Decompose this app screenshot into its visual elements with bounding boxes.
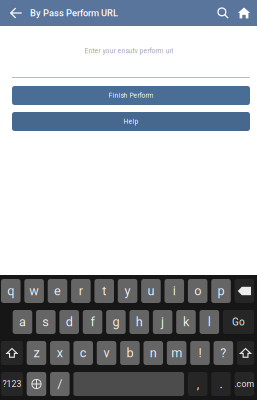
button[interactable]: Help — [12, 112, 250, 131]
staticText: v — [104, 346, 110, 360]
button[interactable]: h — [129, 310, 149, 334]
button[interactable]: Home — [234, 3, 254, 23]
button[interactable]: q — [1, 279, 21, 303]
button[interactable]: n — [143, 341, 163, 365]
staticText: t — [102, 284, 106, 298]
staticText: Finish Perform — [108, 92, 153, 99]
button[interactable]: b — [120, 341, 140, 365]
button[interactable]: Go — [223, 310, 254, 334]
button[interactable]: ? — [214, 341, 233, 365]
button[interactable]: .com — [235, 372, 254, 396]
staticText: w — [29, 284, 39, 298]
button[interactable]: z — [27, 341, 46, 365]
button[interactable]: d — [59, 310, 79, 334]
staticText: Enter your ensutv perform url — [84, 47, 173, 55]
button[interactable]: ! — [190, 341, 210, 365]
button[interactable]: f — [83, 310, 102, 334]
staticText: , — [197, 377, 199, 391]
button[interactable]: Finish Perform — [12, 86, 250, 105]
staticText: h — [136, 315, 143, 329]
button[interactable] — [73, 372, 184, 396]
button[interactable]: m — [167, 341, 186, 365]
staticText: u — [147, 284, 154, 298]
staticText: x — [57, 346, 63, 360]
button[interactable]: Shift — [1, 341, 23, 365]
button[interactable]: i — [164, 279, 184, 303]
button[interactable]: k — [176, 310, 196, 334]
staticText: q — [7, 284, 14, 298]
button[interactable]: Backspace — [235, 279, 254, 303]
staticText: g — [112, 315, 119, 329]
staticText: p — [217, 284, 224, 298]
staticText: . — [219, 377, 222, 391]
staticText: .com — [235, 379, 254, 389]
staticText: ! — [198, 346, 201, 360]
staticText: Help — [123, 118, 138, 125]
staticText: ? — [220, 346, 226, 360]
staticText: r — [79, 284, 83, 298]
staticText: k — [183, 315, 189, 329]
staticText: s — [42, 315, 49, 329]
button[interactable]: w — [24, 279, 44, 303]
button[interactable]: u — [141, 279, 161, 303]
staticText: ?123 — [2, 379, 21, 389]
staticText: d — [66, 315, 73, 329]
staticText: i — [173, 284, 176, 298]
staticText: f — [90, 315, 94, 329]
staticText: By Pass Perform URL — [30, 7, 118, 18]
button[interactable]: v — [97, 341, 116, 365]
button[interactable]: Shift — [237, 341, 254, 365]
button[interactable]: ?123 — [1, 372, 23, 396]
button[interactable]: e — [48, 279, 67, 303]
staticText: z — [33, 346, 39, 360]
button[interactable]: g — [106, 310, 126, 334]
button[interactable]: t — [94, 279, 114, 303]
staticText: l — [208, 315, 211, 329]
button[interactable]: Search — [213, 3, 233, 23]
button[interactable]: c — [73, 341, 93, 365]
staticText: / — [57, 377, 62, 391]
staticText: m — [171, 346, 182, 360]
staticText: y — [125, 284, 131, 298]
button[interactable]: a — [13, 310, 32, 334]
button[interactable]: y — [118, 279, 137, 303]
staticText: n — [150, 346, 157, 360]
button[interactable]: j — [153, 310, 172, 334]
button[interactable]: . — [211, 372, 231, 396]
staticText: c — [80, 346, 87, 360]
button[interactable]: s — [36, 310, 56, 334]
button[interactable]: Switch language — [27, 372, 46, 396]
button[interactable]: p — [211, 279, 231, 303]
button[interactable]: r — [71, 279, 91, 303]
staticText: o — [194, 284, 201, 298]
button[interactable]: o — [188, 279, 207, 303]
button[interactable]: , — [188, 372, 207, 396]
staticText: j — [161, 315, 164, 329]
button[interactable]: x — [50, 341, 70, 365]
button[interactable]: Back — [5, 2, 27, 24]
button[interactable]: l — [200, 310, 219, 334]
button[interactable]: / — [50, 372, 70, 396]
staticText: e — [54, 284, 61, 298]
staticText: b — [126, 346, 133, 360]
staticText: Go — [232, 316, 245, 328]
staticText: a — [19, 315, 26, 329]
